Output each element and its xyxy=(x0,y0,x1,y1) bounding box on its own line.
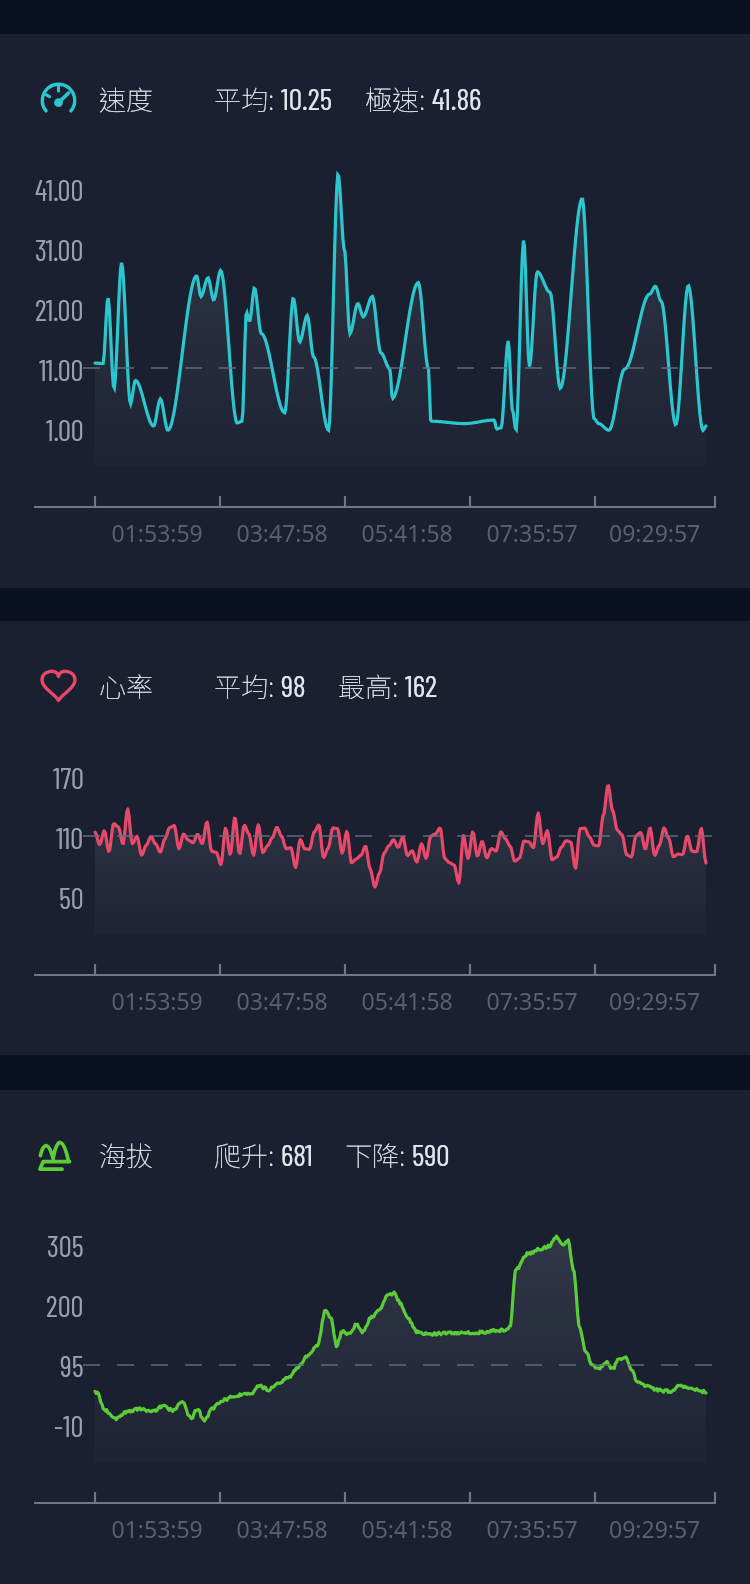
other: Elevation xyxy=(35,1132,82,1179)
button[interactable]: Heart rate xyxy=(0,621,750,1055)
button[interactable]: Elevation xyxy=(0,1090,750,1584)
other: Heart rate xyxy=(35,663,82,710)
other: Speed xyxy=(35,76,82,123)
button[interactable]: Speed xyxy=(0,34,750,588)
